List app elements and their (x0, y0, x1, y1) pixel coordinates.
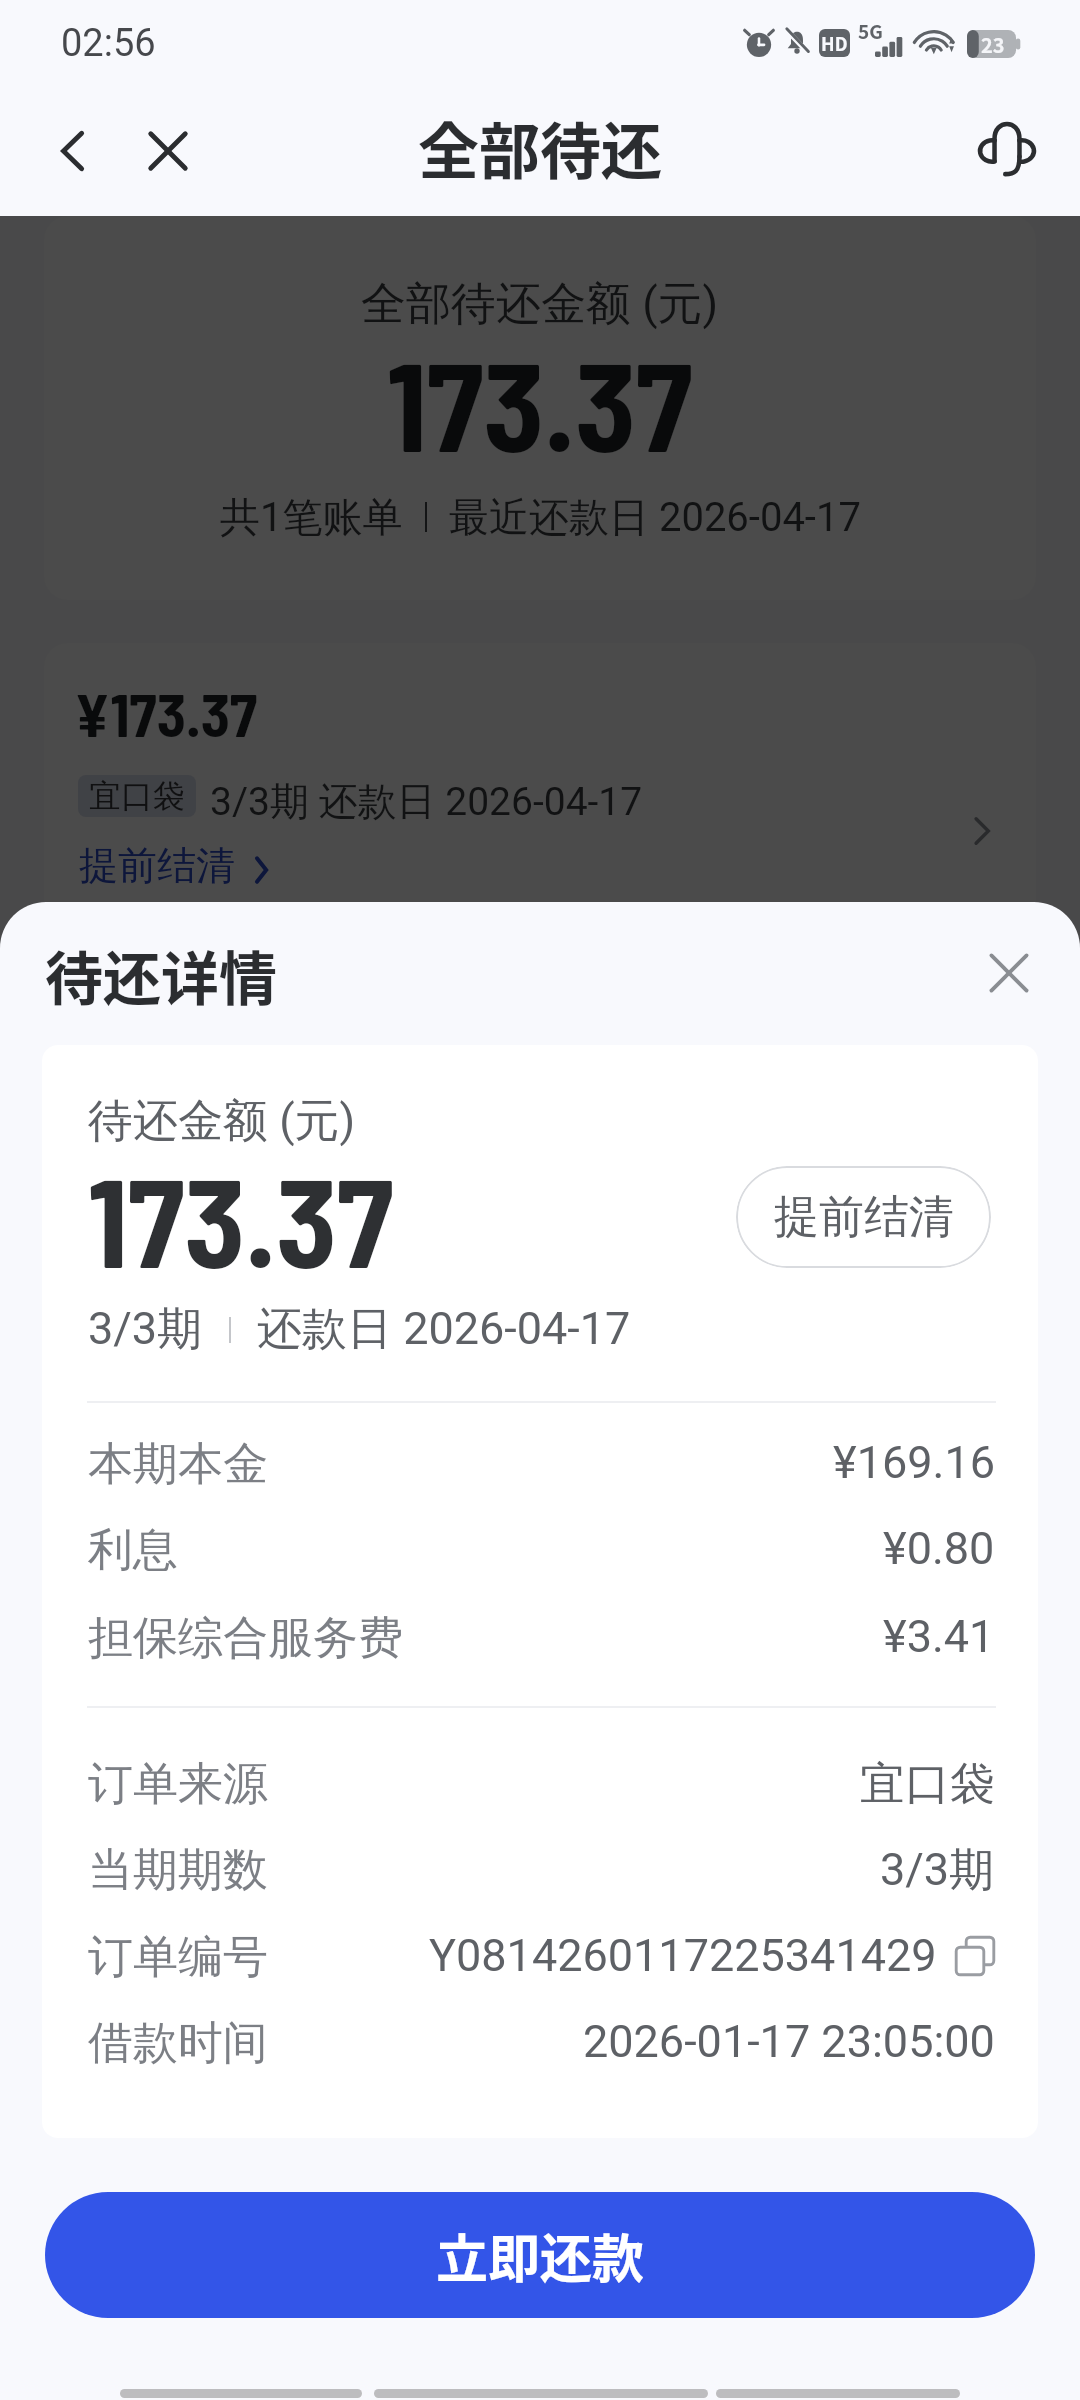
staticText: 待还金额 (元) (88, 1093, 356, 1150)
button[interactable]: Back (30, 107, 118, 195)
staticText: 173.37 (88, 1143, 394, 1293)
staticText: ¥173.37 (74, 677, 257, 749)
staticText: 2026-01-17 23:05:00 (583, 2015, 995, 2068)
staticText: 立即还款 (436, 2218, 645, 2293)
staticText: 共1笔账单 (220, 492, 403, 542)
staticText: 订单编号 (88, 1929, 268, 1986)
staticText: 宜口袋 (860, 1756, 995, 1813)
other: Copy order number (955, 1936, 995, 1976)
staticText: 173.37 (387, 327, 693, 477)
staticText: 全部待还 (418, 103, 663, 191)
staticText: 当期期数 (88, 1842, 268, 1899)
staticText: 宜口袋 (89, 776, 185, 816)
staticText: 待还详情 (45, 933, 278, 1017)
staticText: 利息 (88, 1522, 178, 1579)
staticText: 23 (981, 30, 1005, 58)
staticText: 5G (858, 17, 883, 45)
staticText: 提前结清 (774, 1189, 954, 1246)
staticText: ¥169.16 (833, 1436, 995, 1489)
staticText: 3/3期 (880, 1842, 995, 1899)
staticText: 提前结清 (79, 841, 235, 890)
button[interactable]: 立即还款 (45, 2192, 1035, 2318)
staticText: 本期本金 (88, 1436, 268, 1493)
button[interactable]: Customer service (963, 102, 1051, 190)
staticText: ¥3.41 (883, 1610, 995, 1663)
staticText: 3/3期 (88, 1301, 203, 1358)
staticText: 借款时间 (88, 2015, 268, 2072)
button[interactable]: 提前结清 (736, 1166, 991, 1268)
staticText: 3/3期 还款日 2026-04-17 (210, 777, 643, 826)
staticText: HD (821, 30, 848, 56)
button[interactable]: Close (967, 931, 1051, 1015)
staticText: 最近还款日 2026-04-17 (449, 492, 861, 542)
staticText: ¥0.80 (883, 1522, 995, 1575)
staticText: 还款日 2026-04-17 (257, 1301, 631, 1358)
staticText: 担保综合服务费 (88, 1610, 403, 1667)
staticText: Y0814260117225341429 (429, 1929, 937, 1982)
staticText: 订单来源 (88, 1756, 268, 1813)
button[interactable]: Close (124, 107, 212, 195)
staticText: 全部待还金额 (元) (361, 276, 719, 333)
button[interactable]: 提前结清 (79, 841, 283, 890)
staticText: 02:56 (61, 21, 156, 66)
